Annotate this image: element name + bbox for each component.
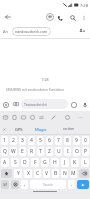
staticText: V [45,170,49,177]
button[interactable]: J [61,158,69,167]
button[interactable]: Back [0,10,16,24]
button[interactable]: D [21,158,29,167]
button[interactable]: 1 [1,136,8,145]
staticText: 5 [39,137,42,144]
staticText: L [84,159,87,166]
staticText: . [71,181,73,188]
button[interactable]: Translate [37,113,45,121]
staticText: Magic [35,127,47,132]
button[interactable]: 7 [55,136,62,145]
button[interactable]: I [64,147,71,156]
button[interactable]: Z [46,147,53,156]
button[interactable]: 4 [28,136,35,145]
button[interactable]: Send message [77,180,89,189]
button[interactable]: Chat features [43,10,57,24]
button[interactable]: P [82,147,89,156]
button[interactable]: C [34,169,41,178]
staticText: W [11,148,16,155]
button[interactable]: R [28,147,35,156]
button[interactable]: More keyboard options [76,113,84,121]
staticText: O [75,148,79,155]
button[interactable]: Magic [30,123,52,135]
button[interactable]: Stickers [1,113,9,121]
button[interactable]: Emoji [68,99,79,110]
button[interactable]: Voice typing [63,113,71,121]
button[interactable]: 5 [37,136,44,145]
staticText: , [24,181,26,188]
button[interactable]: Y [14,169,22,178]
button[interactable]: Search [66,11,79,24]
staticText: S [14,159,17,166]
button[interactable]: 3 [19,136,26,145]
staticText: !#1 [3,183,8,187]
staticText: X [27,170,30,177]
button[interactable]: , [21,180,28,189]
staticText: GPS [15,127,23,132]
button[interactable]: O [73,147,80,156]
button[interactable]: U [55,147,62,156]
staticText: 3 [21,137,24,144]
staticText: T [39,148,42,155]
button[interactable]: Add recipient [76,25,88,37]
staticText: 8 [66,137,69,144]
button[interactable]: Clipboard [10,113,18,121]
staticText: Q [3,148,7,155]
button[interactable]: GIF [19,113,27,121]
button[interactable]: 0 [82,136,89,145]
staticText: 1 [3,137,6,144]
button[interactable]: E [19,147,26,156]
button[interactable]: A [1,158,9,167]
button[interactable]: G [41,158,49,167]
staticText: 7 [57,137,60,144]
button[interactable]: Handwriting [49,113,57,121]
button[interactable]: GPS [8,123,30,135]
button[interactable]: Camera [11,99,21,109]
button[interactable]: Symbols [1,180,9,189]
staticText: P [84,148,88,155]
button[interactable]: H [51,158,59,167]
button[interactable]: B [52,169,59,178]
button[interactable]: an dem [56,123,82,135]
staticText: An [3,29,9,34]
button[interactable]: 6 [46,136,53,145]
button[interactable]: 8 [64,136,71,145]
button[interactable]: K [71,158,79,167]
staticText: SMS/MMS mit verabredeten Kontakten [6,88,90,92]
button[interactable]: 2 [10,136,17,145]
staticText: F [34,159,37,166]
button[interactable]: Add attachment [0,99,11,110]
button[interactable]: F [31,158,39,167]
button[interactable]: L [81,158,89,167]
button[interactable]: N [61,169,68,178]
button[interactable]: Textnachricht [21,99,68,109]
button[interactable]: 9 [73,136,80,145]
button[interactable]: Q [1,147,8,156]
button[interactable]: V [43,169,50,178]
button[interactable]: More options [79,13,89,23]
staticText: Deutsch [43,183,53,187]
button[interactable]: nandosuebeck.com [12,27,51,36]
staticText: U [57,148,61,155]
staticText: I [67,148,69,155]
button[interactable]: . [68,180,75,189]
button[interactable]: Backspace [79,169,89,178]
staticText: R [30,148,34,155]
staticText: 7:28 [0,77,90,82]
button[interactable]: X [24,169,32,178]
button[interactable]: M [70,169,77,178]
button[interactable]: W [10,147,17,156]
button[interactable]: Close suggestions [1,126,8,133]
button[interactable]: T [37,147,44,156]
staticText: B [54,170,58,177]
staticText: J [64,159,66,166]
button[interactable]: Call [53,11,66,24]
staticText: Y [17,170,20,177]
staticText: 9 [75,137,78,144]
button[interactable]: S [11,158,19,167]
button[interactable]: Shift [1,169,12,178]
button[interactable]: Emoji [28,113,36,121]
button[interactable]: Space [30,180,66,189]
button[interactable]: Settings [11,180,19,189]
button[interactable]: Voice input [79,99,90,110]
staticText: 6 [48,137,51,144]
